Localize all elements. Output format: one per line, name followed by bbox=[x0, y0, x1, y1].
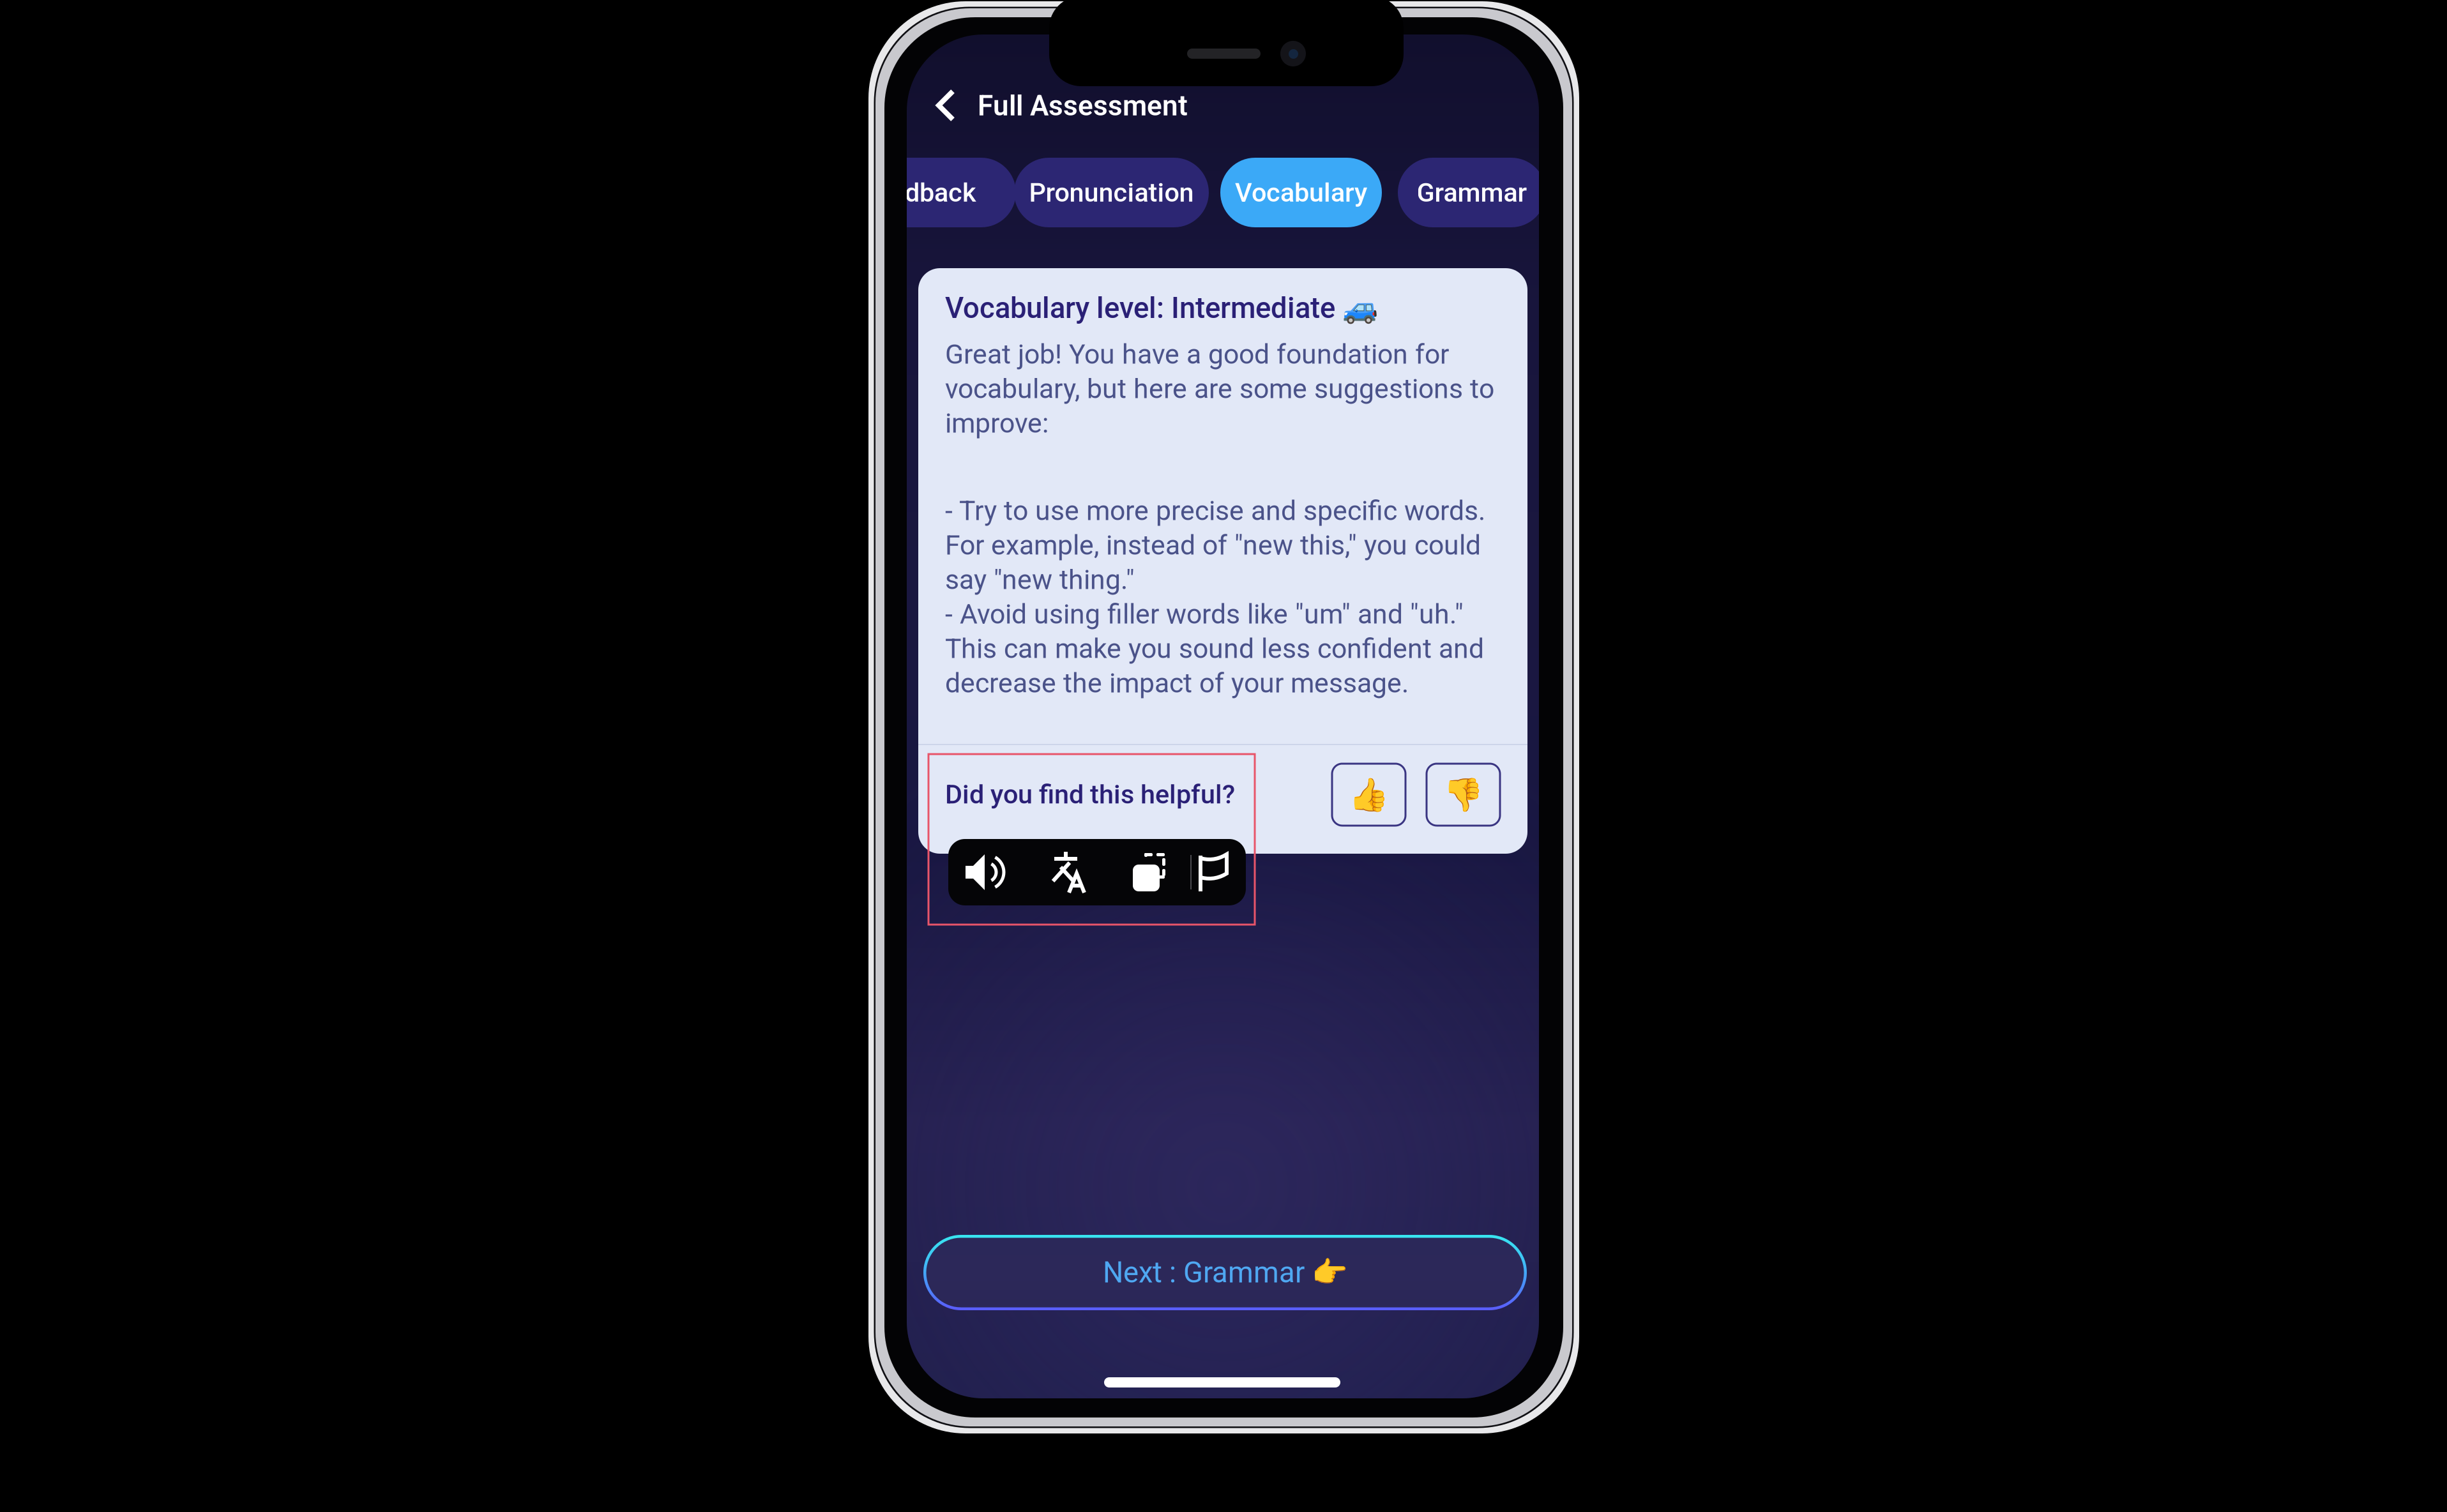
staticText: Grammar bbox=[1417, 177, 1527, 208]
button[interactable]: Vocabulary bbox=[1220, 158, 1382, 227]
staticText: Did you find this helpful? bbox=[945, 779, 1235, 810]
staticText: edback bbox=[891, 177, 976, 208]
staticText: Vocabulary bbox=[1235, 177, 1367, 208]
button[interactable]: Report bbox=[1186, 839, 1242, 905]
button[interactable]: Not helpful bbox=[1427, 764, 1500, 826]
button[interactable]: Grammar bbox=[1398, 158, 1546, 227]
button[interactable]: Pronunciation bbox=[1014, 158, 1209, 227]
staticText: - Try to use more precise and specific w… bbox=[945, 495, 1485, 699]
button[interactable]: edback bbox=[851, 158, 1016, 227]
staticText: Great job! You have a good foundation fo… bbox=[945, 338, 1494, 439]
button[interactable]: Translate bbox=[1040, 839, 1096, 905]
button[interactable]: Back bbox=[926, 80, 972, 130]
staticText: Next : Grammar 👉 bbox=[1103, 1256, 1347, 1289]
button[interactable]: Helpful bbox=[1332, 764, 1405, 826]
staticText: 👎 bbox=[1443, 776, 1483, 814]
staticText: 👍 bbox=[1349, 776, 1389, 814]
staticText: Full Assessment bbox=[978, 89, 1188, 122]
staticText: Vocabulary level: Intermediate 🚙 bbox=[945, 291, 1378, 325]
button[interactable]: Speak bbox=[957, 839, 1013, 905]
button[interactable]: Copy bbox=[1121, 839, 1178, 905]
staticText: Pronunciation bbox=[1029, 177, 1194, 208]
button[interactable]: Next : Grammar 👉 bbox=[923, 1235, 1527, 1310]
